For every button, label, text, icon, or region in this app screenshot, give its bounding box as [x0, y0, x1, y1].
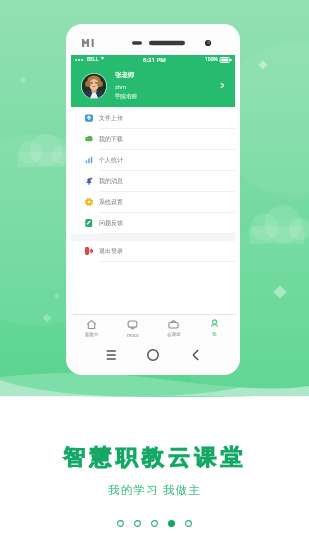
- staticText: 系统设置: [99, 198, 123, 206]
- staticText: 我: [212, 332, 217, 338]
- staticText: 张老师: [115, 71, 135, 79]
- staticText: 个人统计: [99, 156, 123, 164]
- staticText: zhm: [115, 83, 127, 90]
- staticText: BELL: [87, 56, 99, 63]
- staticText: 文件上传: [99, 114, 123, 122]
- staticText: 会课堂: [167, 332, 181, 338]
- staticText: 我的下载: [99, 135, 123, 143]
- button[interactable]: 文件上传: [71, 108, 235, 129]
- button[interactable]: 新教方: [71, 315, 112, 341]
- staticText: 学院名称: [115, 93, 137, 100]
- button[interactable]: 张老师: [71, 64, 235, 107]
- staticText: 智慧职教云课堂: [63, 444, 247, 472]
- staticText: 退出登录: [99, 247, 123, 255]
- staticText: 6:21 PM: [143, 56, 166, 64]
- button[interactable]: 问题反馈: [71, 213, 235, 234]
- staticText: mooc: [127, 332, 139, 338]
- staticText: 问题反馈: [99, 219, 123, 227]
- button[interactable]: 个人统计: [71, 150, 235, 171]
- staticText: 我的消息: [99, 177, 123, 185]
- staticText: 新教方: [85, 332, 99, 338]
- button[interactable]: mooc: [112, 315, 153, 341]
- button[interactable]: 我的消息: [71, 171, 235, 192]
- other: Profile details: [218, 81, 227, 90]
- button[interactable]: 会课堂: [153, 315, 194, 341]
- button[interactable]: 系统设置: [71, 192, 235, 213]
- button[interactable]: 退出登录: [71, 241, 235, 262]
- button[interactable]: 我: [194, 315, 235, 341]
- staticText: 100%: [205, 56, 218, 63]
- staticText: 我的学习 我做主: [108, 482, 202, 498]
- button[interactable]: 我的下载: [71, 129, 235, 150]
